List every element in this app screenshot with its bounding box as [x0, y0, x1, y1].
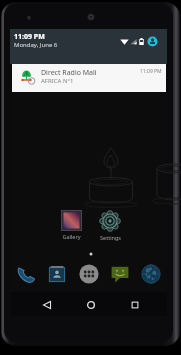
staticText: AFRICA N°1 [41, 77, 74, 85]
button[interactable]: Settings [82, 210, 138, 241]
button[interactable]: Back [36, 294, 58, 316]
button[interactable]: Contacts [47, 264, 67, 284]
button[interactable]: Gallery [43, 210, 99, 240]
button[interactable]: Recent apps [124, 294, 146, 316]
button[interactable]: Direct Radio Mali [12, 64, 166, 92]
button[interactable]: Browser [141, 264, 161, 284]
button[interactable]: Phone [16, 264, 36, 284]
button[interactable]: Messaging [110, 264, 130, 284]
staticText: 11:09 PM [14, 32, 45, 42]
staticText: Direct Radio Mali [41, 68, 97, 78]
button[interactable]: Home [80, 294, 102, 316]
staticText: Settings [100, 234, 121, 241]
staticText: Gallery [62, 233, 81, 240]
staticText: 11:09 PM [140, 68, 162, 75]
button[interactable]: Apps [79, 264, 99, 284]
staticText: Monday, June 6 [14, 41, 58, 49]
